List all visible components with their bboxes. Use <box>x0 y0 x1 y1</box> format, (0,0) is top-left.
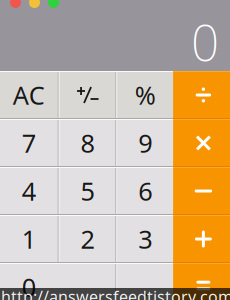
button[interactable]: 3 <box>117 216 173 262</box>
staticText: AC <box>13 78 45 112</box>
button[interactable]: Subtract <box>173 168 230 214</box>
button[interactable]: 2 <box>60 216 115 262</box>
button[interactable]: Multiply <box>173 120 230 166</box>
staticText: 4 <box>22 174 36 208</box>
staticText: 0 <box>22 270 36 300</box>
button[interactable]: 1 <box>0 216 58 262</box>
staticText: 6 <box>138 174 152 208</box>
staticText: http://answersfeedtistory.com <box>1 286 230 300</box>
button[interactable]: Equals <box>173 264 230 300</box>
button[interactable]: % <box>117 72 173 118</box>
button[interactable]: Divide <box>173 72 230 118</box>
button[interactable]: Add <box>173 216 230 262</box>
button[interactable]: AC <box>0 72 58 118</box>
button[interactable]: 7 <box>0 120 58 166</box>
staticText: 7 <box>22 126 36 160</box>
staticText: 9 <box>138 126 152 160</box>
staticText: 5 <box>81 174 95 208</box>
button[interactable]: Zoom <box>48 0 59 8</box>
staticText: 2 <box>81 222 95 256</box>
button[interactable]: 4 <box>0 168 58 214</box>
staticText: . <box>142 270 149 300</box>
staticText: 3 <box>138 222 152 256</box>
button[interactable]: 0 <box>0 264 115 300</box>
button[interactable]: Close <box>10 0 21 8</box>
button[interactable]: 5 <box>60 168 115 214</box>
staticText: 1 <box>22 222 36 256</box>
staticText: 8 <box>81 126 95 160</box>
staticText: % <box>135 78 156 112</box>
button[interactable]: 6 <box>117 168 173 214</box>
button[interactable]: 8 <box>60 120 115 166</box>
button[interactable]: 9 <box>117 120 173 166</box>
staticText: 0 <box>191 9 219 74</box>
button[interactable]: . <box>117 264 173 300</box>
button[interactable]: Plus minus <box>60 72 115 118</box>
button[interactable]: Minimize <box>29 0 40 8</box>
